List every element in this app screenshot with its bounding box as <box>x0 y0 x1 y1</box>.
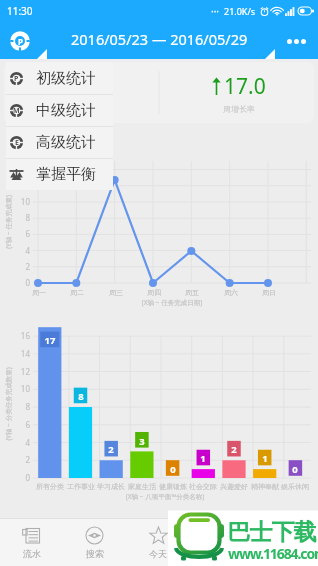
button[interactable]: P <box>6 62 113 94</box>
staticText: 周日 <box>254 288 284 297</box>
staticText: 工作事业 <box>64 482 98 491</box>
staticText: 11:30 <box>7 4 33 18</box>
staticText: M <box>13 106 20 116</box>
staticText: 17 <box>38 334 62 347</box>
staticText: 8 <box>12 401 30 412</box>
staticText: 学习成长 <box>94 482 128 491</box>
button[interactable]: E <box>6 127 113 158</box>
staticText: 2 <box>12 454 30 465</box>
staticText: 0 <box>283 463 307 476</box>
button[interactable]: Statistics level <box>8 29 32 53</box>
button[interactable]: 设置 <box>254 519 318 566</box>
staticText: 所有分类 <box>33 482 67 491</box>
staticText: (X轴 − 任务完成日期) <box>102 298 242 307</box>
staticText: 6 <box>12 419 30 430</box>
staticText: 4 <box>12 245 30 256</box>
staticText: 周二 <box>62 288 92 297</box>
staticText: 中级统计 <box>36 101 96 120</box>
staticText: 2 <box>222 443 246 456</box>
staticText: 周三 <box>101 288 131 297</box>
staticText: 本周均数 <box>64 104 96 114</box>
staticText: 17.0 <box>224 72 266 101</box>
button[interactable]: 流水 <box>0 519 63 566</box>
staticText: 1 <box>191 452 215 465</box>
staticText: 今天 <box>149 548 167 559</box>
staticText: ··· <box>211 4 220 18</box>
button[interactable]: M <box>6 95 113 126</box>
staticText: 周增长率 <box>223 104 255 114</box>
staticText: 6 <box>12 228 30 239</box>
staticText: 家庭生活 <box>125 482 159 491</box>
staticText: 2 <box>99 443 123 456</box>
staticText: 10 <box>12 383 30 394</box>
staticText: 4 <box>12 437 30 448</box>
button[interactable]: 17.0 <box>159 62 318 123</box>
staticText: 12 <box>12 366 30 377</box>
staticText: 高级统计 <box>36 133 96 152</box>
staticText: 流水 <box>23 548 41 559</box>
staticText: 8 <box>12 212 30 223</box>
staticText: (Y轴 − 任务完成量) <box>4 182 13 262</box>
staticText: 巴士下载 <box>228 518 316 547</box>
staticText: 统计 <box>213 548 231 559</box>
staticText: 10 <box>12 196 30 207</box>
staticText: 8 <box>69 390 93 403</box>
staticText: (X轴 − 八项平衡™分类名称) <box>85 492 245 501</box>
staticText: 21.0K/s <box>224 5 256 17</box>
staticText: 搜索 <box>86 548 104 559</box>
button[interactable]: 掌握平衡 <box>6 159 113 190</box>
staticText: P <box>18 36 23 47</box>
staticText: 掌握平衡 <box>36 165 96 184</box>
staticText: 0 <box>161 463 185 476</box>
staticText: P <box>14 74 19 84</box>
staticText: 2016/05/23 — 2016/05/29 <box>71 29 248 49</box>
staticText: (Y轴 − 分类任务完成数量) <box>4 355 13 453</box>
staticText: 娱乐休闲 <box>278 482 312 491</box>
staticText: 0 <box>12 277 30 288</box>
staticText: 16 <box>12 330 30 341</box>
staticText: 2.43 <box>59 72 101 101</box>
button[interactable]: 搜索 <box>63 519 126 566</box>
staticText: 1 <box>253 452 277 465</box>
staticText: 兴趣爱好 <box>217 482 251 491</box>
staticText: 初级统计 <box>36 69 96 88</box>
staticText: 周五 <box>177 288 207 297</box>
button[interactable]: More options <box>281 28 311 54</box>
staticText: www.11684.com <box>228 544 318 563</box>
staticText: 周六 <box>216 288 246 297</box>
staticText: 3 <box>130 435 154 448</box>
staticText: 社会交际 <box>186 482 220 491</box>
staticText: 2 <box>12 261 30 272</box>
staticText: 0 <box>12 472 30 483</box>
staticText: 健康锻炼 <box>156 482 190 491</box>
staticText: 设置 <box>277 548 295 559</box>
staticText: 周一 <box>24 288 54 297</box>
button[interactable]: 今天 <box>126 519 190 566</box>
staticText: 14 <box>12 348 30 359</box>
staticText: E <box>15 138 19 148</box>
button[interactable]: 统计 <box>190 519 254 566</box>
staticText: 精神奉献 <box>248 482 282 491</box>
staticText: 周四 <box>139 288 169 297</box>
button[interactable]: 2.43 <box>0 62 159 123</box>
